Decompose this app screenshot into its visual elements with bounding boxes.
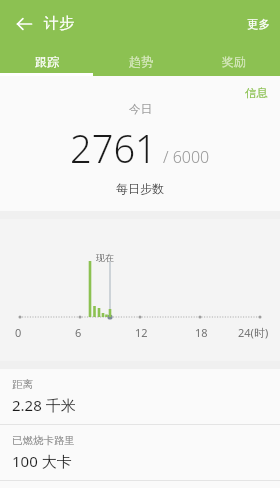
staticText: 计步 <box>44 14 74 33</box>
staticText: 24(时) <box>238 325 269 340</box>
button[interactable]: 更多 <box>237 11 280 37</box>
button[interactable]: 已燃烧卡路里 <box>0 425 280 480</box>
staticText: 今日 <box>129 102 152 116</box>
staticText: 现在 <box>96 252 114 263</box>
staticText: 0 <box>15 325 22 340</box>
staticText: / 6000 <box>163 146 210 168</box>
staticText: 100 大卡 <box>12 451 72 471</box>
staticText: 距离 <box>12 378 33 391</box>
staticText: 18 <box>195 325 208 340</box>
staticText: 更多 <box>247 17 270 31</box>
staticText: 2.28 千米 <box>12 395 76 415</box>
staticText: 2761 <box>70 122 157 174</box>
staticText: 已燃烧卡路里 <box>12 434 75 447</box>
button[interactable]: 趋势 <box>94 47 187 76</box>
staticText: 6 <box>75 325 82 340</box>
button[interactable]: 距离 <box>0 369 280 424</box>
button[interactable]: 跟踪 <box>0 47 94 76</box>
button[interactable]: Back <box>8 8 40 40</box>
staticText: 跟踪 <box>35 54 59 69</box>
staticText: 趋势 <box>129 54 153 69</box>
staticText: 奖励 <box>222 54 246 69</box>
staticText: 12 <box>135 325 148 340</box>
button[interactable]: 奖励 <box>187 47 280 76</box>
staticText: 信息 <box>245 86 268 100</box>
staticText: 每日步数 <box>116 181 164 196</box>
button[interactable]: 信息 <box>233 82 280 104</box>
